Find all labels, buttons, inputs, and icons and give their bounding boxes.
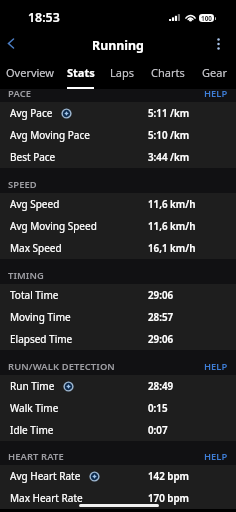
staticText: Best Pace — [10, 150, 56, 164]
staticText: Avg Heart Rate — [10, 469, 81, 483]
staticText: Max Heart Rate — [10, 491, 83, 505]
button[interactable]: Avg Moving Speed — [0, 215, 236, 237]
staticText: Idle Time — [10, 423, 54, 437]
button[interactable]: Avg Pace — [0, 102, 236, 124]
staticText: RUN/WALK DETECTION — [8, 360, 115, 373]
button[interactable]: Max Speed — [0, 237, 236, 259]
staticText: Avg Pace — [10, 106, 53, 120]
staticText: 29:06 — [148, 289, 174, 302]
button[interactable]: Run Time — [0, 375, 236, 397]
staticText: HEART RATE — [8, 450, 64, 463]
staticText: Walk Time — [10, 401, 59, 415]
staticText: 0:15 — [148, 402, 168, 415]
staticText: Charts — [151, 65, 185, 80]
button[interactable]: Elapsed Time — [0, 328, 236, 350]
staticText: 3:44 /km — [148, 151, 190, 164]
staticText: 28:49 — [148, 380, 174, 393]
button[interactable]: Walk Time — [0, 397, 236, 419]
staticText: 29:06 — [148, 333, 174, 346]
staticText: HELP — [204, 87, 228, 100]
staticText: 16,1 km/h — [148, 242, 196, 255]
staticText: 170 bpm — [148, 492, 190, 505]
staticText: TIMING — [8, 269, 44, 282]
button[interactable]: Stats — [60, 64, 101, 89]
staticText: 0:07 — [148, 424, 168, 437]
staticText: Moving Time — [10, 310, 71, 324]
button[interactable]: HELP — [0, 362, 236, 375]
staticText: 28:57 — [148, 311, 174, 324]
staticText: Overview — [6, 65, 54, 80]
staticText: 142 bpm — [148, 470, 190, 483]
staticText: Total Time — [10, 288, 59, 302]
staticText: Avg Speed — [10, 197, 60, 211]
staticText: Gear — [202, 65, 227, 80]
staticText: 11,6 km/h — [148, 198, 196, 211]
staticText: Stats — [67, 65, 95, 80]
button[interactable]: Avg Heart Rate — [0, 465, 236, 487]
staticText: 100 — [201, 14, 212, 22]
button[interactable]: Total Time — [0, 284, 236, 306]
staticText: PACE — [8, 87, 32, 100]
button[interactable]: More options — [205, 31, 231, 57]
staticText: 5:10 /km — [148, 129, 190, 142]
staticText: 5:11 /km — [148, 107, 190, 120]
staticText: 18:53 — [28, 9, 60, 26]
staticText: Run Time — [10, 379, 55, 393]
button[interactable]: HELP — [0, 452, 236, 465]
staticText: Elapsed Time — [10, 332, 73, 346]
button[interactable]: Laps — [101, 64, 143, 89]
staticText: SPEED — [8, 178, 37, 191]
staticText: HELP — [204, 360, 228, 373]
button[interactable]: Avg Speed — [0, 193, 236, 215]
button[interactable]: Gear — [193, 64, 236, 89]
button[interactable]: Charts — [143, 64, 193, 89]
button[interactable]: Overview — [0, 64, 60, 89]
staticText: Avg Moving Pace — [10, 128, 90, 142]
button[interactable]: Max Heart Rate — [0, 487, 236, 509]
staticText: Laps — [110, 65, 134, 80]
button[interactable]: HELP — [0, 89, 236, 102]
button[interactable]: Moving Time — [0, 306, 236, 328]
staticText: HELP — [204, 450, 228, 463]
button[interactable]: Best Pace — [0, 146, 236, 168]
staticText: 11,6 km/h — [148, 220, 196, 233]
button[interactable]: Avg Moving Pace — [0, 124, 236, 146]
button[interactable]: Idle Time — [0, 419, 236, 441]
button[interactable]: Back — [0, 31, 23, 56]
staticText: Running — [92, 37, 144, 54]
staticText: Max Speed — [10, 241, 62, 255]
staticText: Avg Moving Speed — [10, 219, 97, 233]
